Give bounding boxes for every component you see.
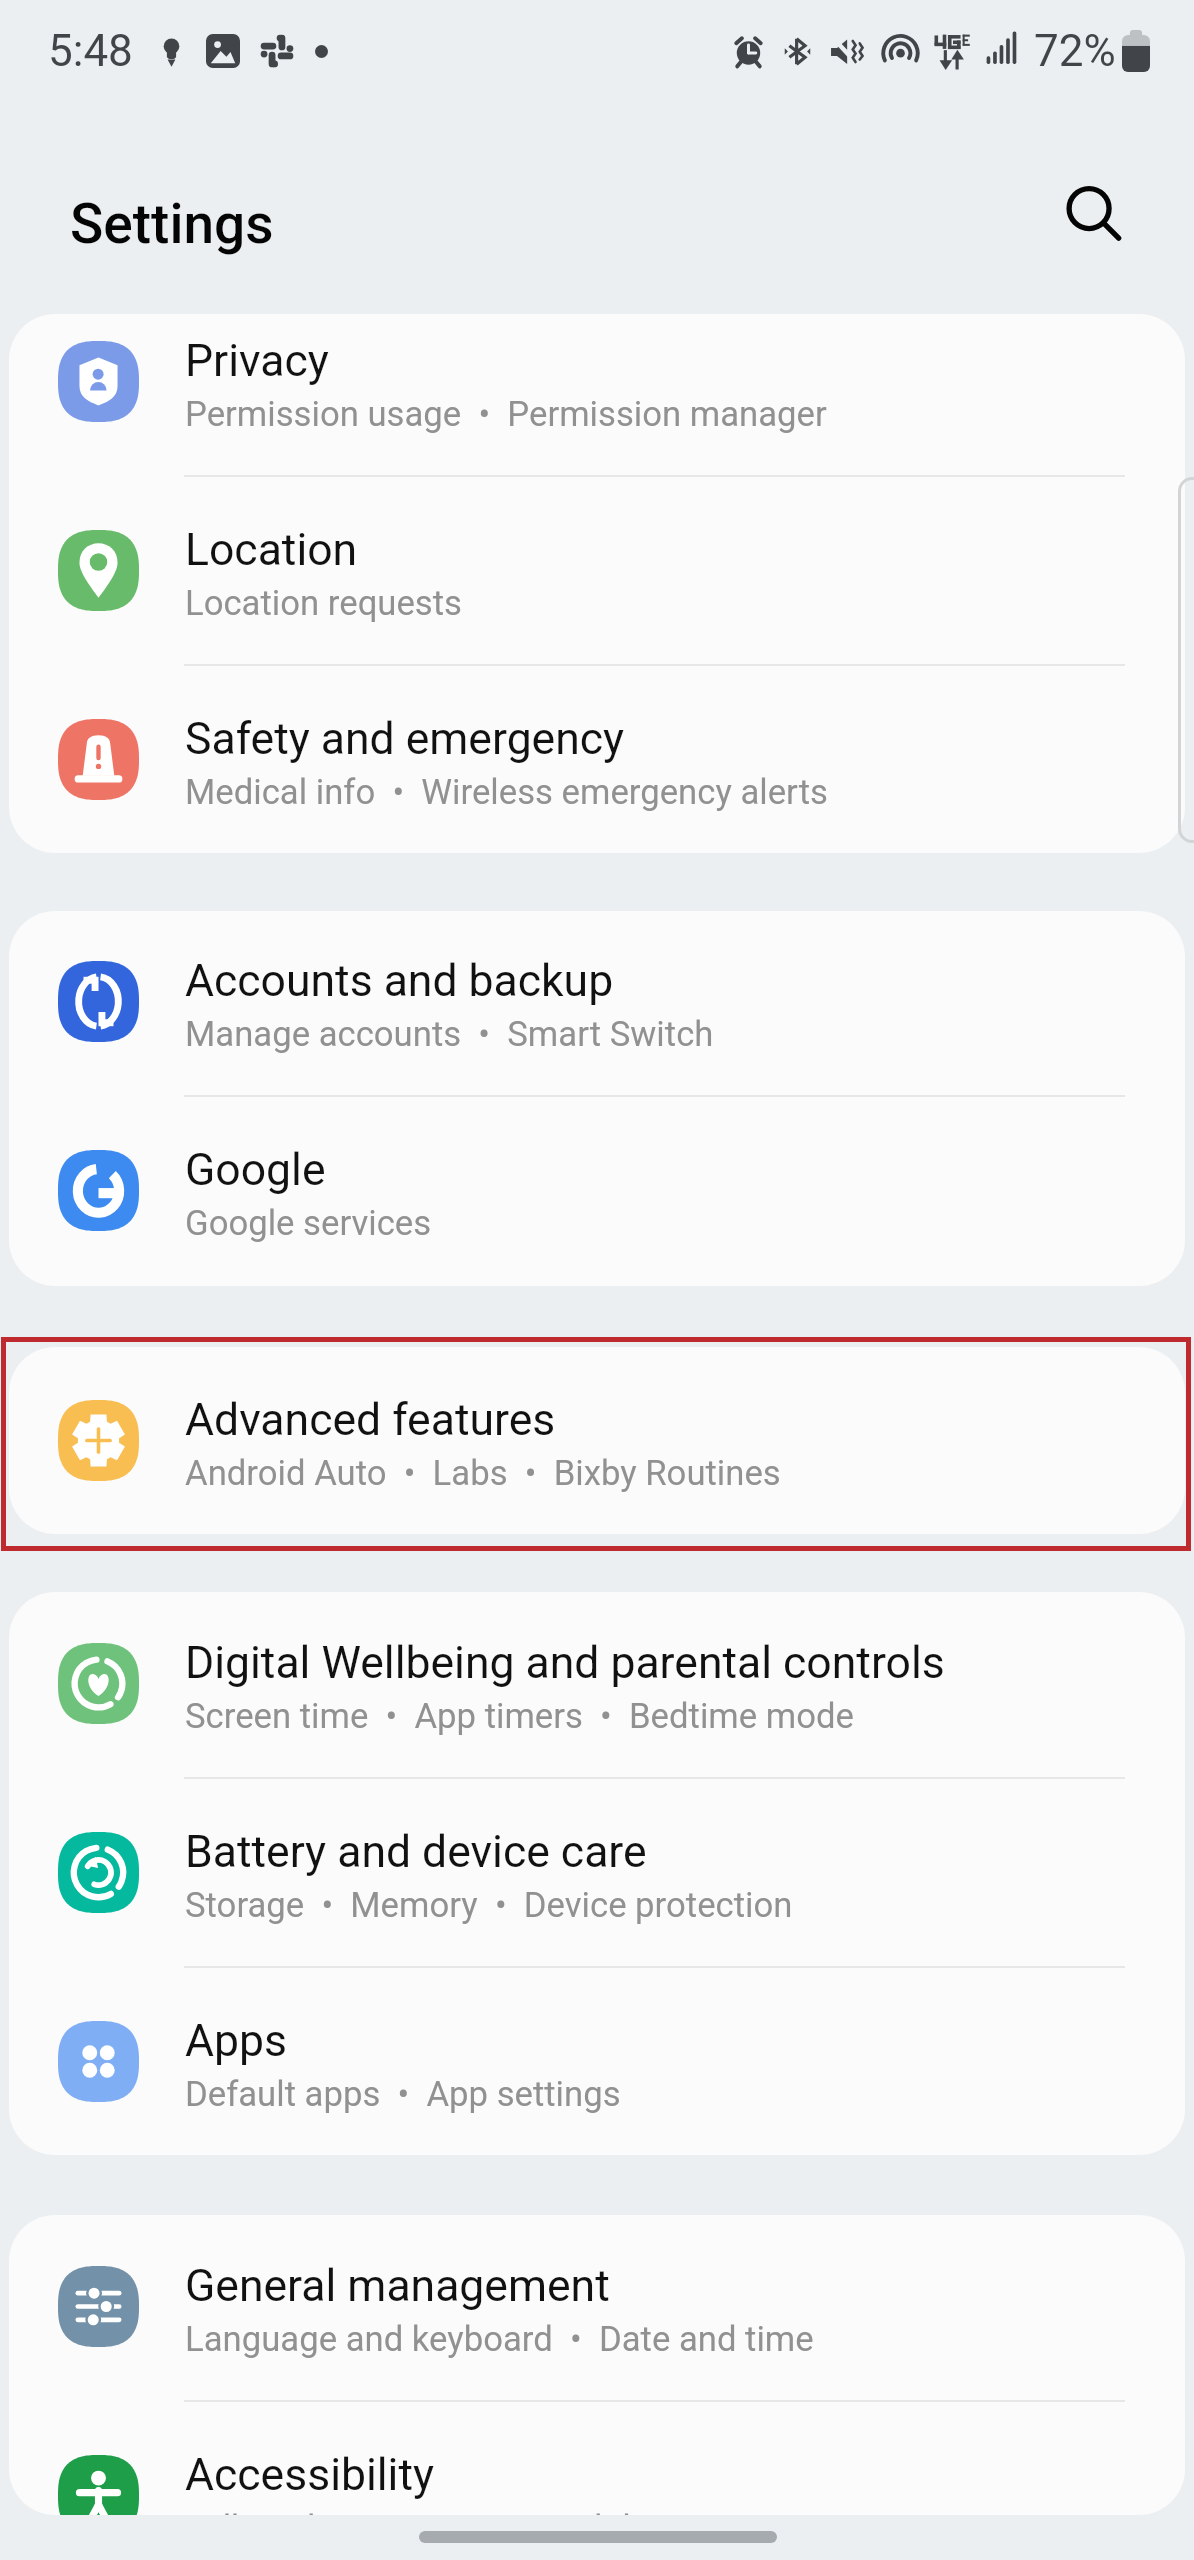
staticText: Accessibility [185,2449,435,2501]
button[interactable]: Accessibility [9,2402,1185,2515]
staticText: Language and keyboard • Date and time [185,2319,814,2360]
staticText: Manage accounts • Smart Switch [185,1014,714,1055]
button[interactable]: Safety and emergency [9,666,1185,853]
staticText: Location requests [185,583,463,624]
staticText: Default apps • App settings [185,2074,621,2115]
staticText: Advanced features [185,1394,556,1446]
staticText: Location [185,524,358,576]
button[interactable]: Search [1047,168,1143,264]
button[interactable]: Apps [9,1968,1185,2155]
staticText: Permission usage • Permission manager [185,394,827,435]
button[interactable]: Location [9,477,1185,664]
staticText: Settings [70,192,274,256]
button[interactable]: Privacy [9,314,1185,475]
staticText: Storage • Memory • Device protection [185,1885,793,1926]
staticText: Medical info • Wireless emergency alerts [185,772,828,813]
staticText: TalkBack • Interaction and dexterity [185,2508,744,2515]
button[interactable]: Advanced features [9,1347,1185,1534]
button[interactable]: Battery and device care [9,1779,1185,1966]
button[interactable]: Google [9,1097,1185,1284]
staticText: Android Auto • Labs • Bixby Routines [185,1453,781,1494]
staticText: 72% [1034,25,1116,77]
staticText: Google [185,1144,326,1196]
staticText: Screen time • App timers • Bedtime mode [185,1696,854,1737]
staticText: General management [185,2260,610,2312]
staticText: Safety and emergency [185,713,625,765]
staticText: Battery and device care [185,1826,647,1878]
staticText: Accounts and backup [185,955,614,1007]
button[interactable]: Accounts and backup [9,911,1185,1095]
staticText: Privacy [185,335,329,387]
button[interactable]: General management [9,2215,1185,2400]
staticText: Google services [185,1203,432,1244]
button[interactable]: Digital Wellbeing and parental controls [9,1592,1185,1777]
staticText: Apps [185,2015,287,2067]
staticText: 5:48 [48,25,133,77]
staticText: Digital Wellbeing and parental controls [185,1637,945,1689]
